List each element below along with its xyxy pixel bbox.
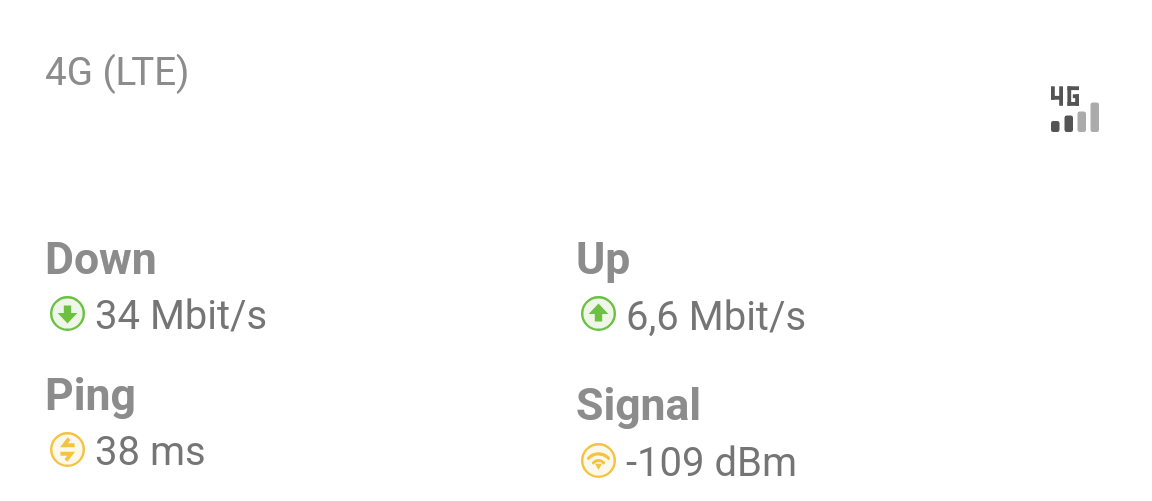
staticText: -109 dBm	[626, 439, 797, 486]
button[interactable]: Download	[50, 296, 85, 331]
staticText: Signal	[576, 379, 702, 431]
button[interactable]: Down	[34, 228, 534, 348]
button[interactable]: 4G (LTE)	[34, 40, 199, 102]
button[interactable]: Signal strength	[581, 443, 616, 478]
button[interactable]: Ping	[34, 364, 534, 484]
staticText: Ping	[45, 369, 136, 421]
button[interactable]: Signal	[565, 374, 1065, 494]
staticText: 34 Mbit/s	[95, 292, 268, 339]
staticText: Up	[576, 233, 631, 285]
button[interactable]: Latency	[50, 432, 85, 467]
staticText: 6,6 Mbit/s	[626, 293, 807, 340]
staticText: 38 ms	[95, 428, 206, 475]
staticText: Down	[45, 233, 157, 285]
button[interactable]: Up	[565, 228, 1065, 348]
button[interactable]: Network type 4G, signal strength	[1045, 80, 1105, 140]
staticText: 4G (LTE)	[45, 49, 190, 94]
button[interactable]: Upload	[581, 296, 616, 331]
